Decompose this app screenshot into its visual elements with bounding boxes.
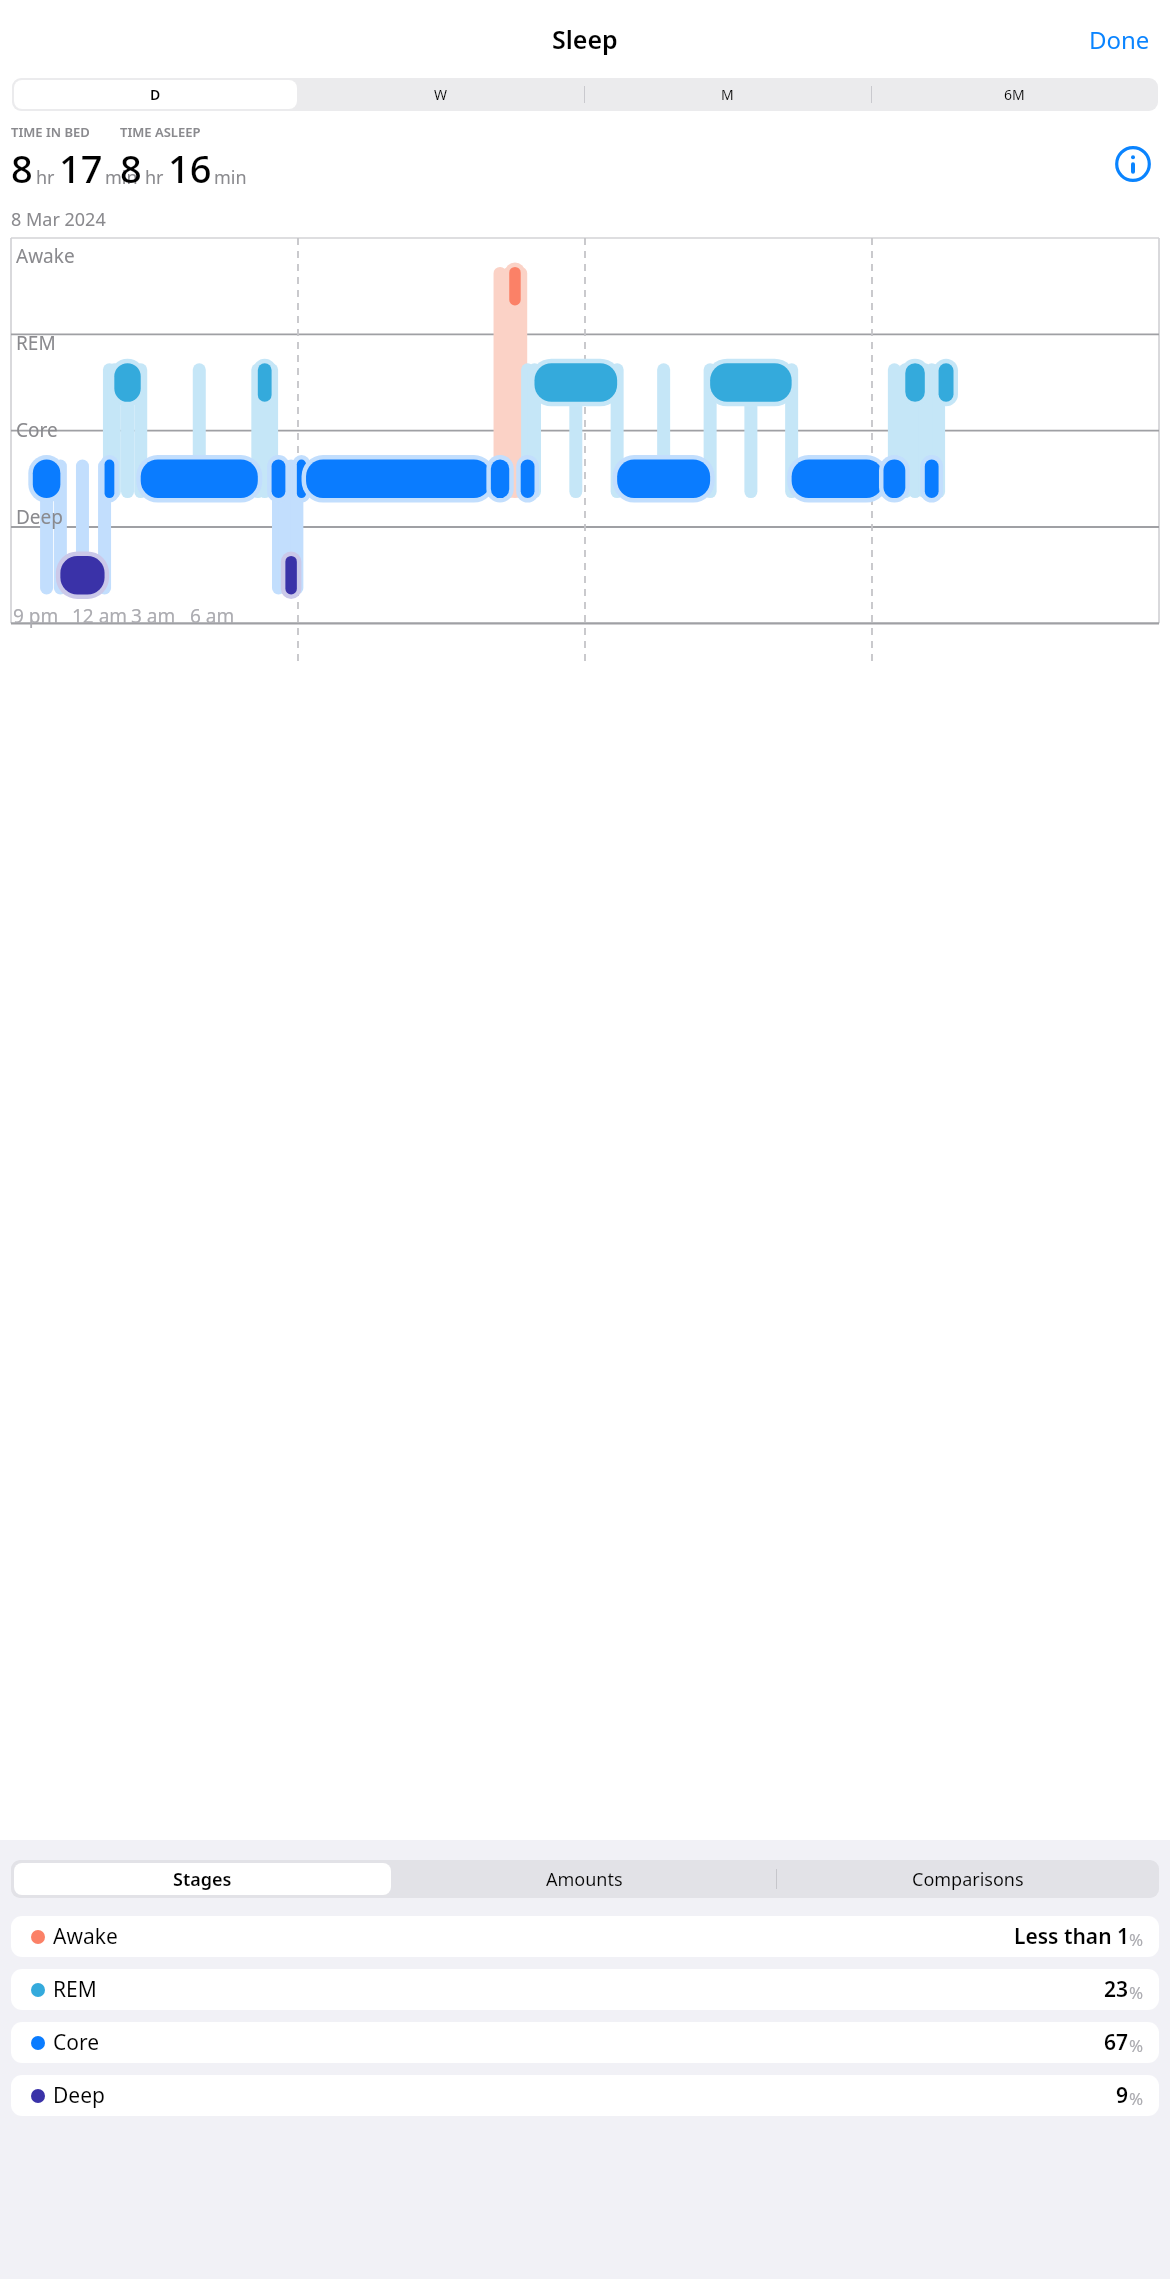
staticText: Comparisons [912,1867,1024,1892]
staticText: 3 am [131,603,176,629]
staticText: 9 pm [13,603,59,629]
staticText: hr [145,165,164,190]
staticText: Deep [53,2081,105,2110]
button[interactable]: Amounts [393,1860,776,1898]
staticText: % [1129,2087,1144,2110]
button[interactable]: 6M [871,78,1158,111]
button[interactable]: W [298,78,584,111]
staticText: REM [16,330,56,356]
staticText: Awake [16,243,75,269]
staticText: 6M [1004,85,1025,104]
staticText: D [150,85,161,104]
staticText: % [1129,1981,1144,2004]
staticText: Amounts [546,1867,623,1892]
button[interactable]: D [14,80,297,109]
staticText: 23 [1104,1975,1129,2004]
button[interactable]: Awake [11,1916,1159,1957]
staticText: Core [53,2028,100,2057]
button[interactable]: Core [11,2022,1159,2063]
staticText: 17 [59,142,103,194]
button[interactable]: Deep [11,2075,1159,2116]
staticText: 67 [1104,2028,1129,2057]
staticText: Stages [173,1867,232,1892]
button[interactable]: Comparisons [776,1860,1159,1898]
button[interactable]: Done [1081,17,1158,62]
staticText: 9 [1116,2081,1129,2110]
staticText: 16 [168,142,212,194]
button[interactable]: Stages [11,1860,393,1898]
staticText: 6 am [190,603,235,629]
staticText: Stages [174,1867,231,1892]
button[interactable]: D [12,78,298,111]
staticText: Deep [16,504,63,530]
staticText: 8 [120,142,142,194]
staticText: 8 Mar 2024 [11,207,106,232]
staticText: Awake [53,1922,118,1951]
button[interactable]: Stages [14,1863,391,1895]
staticText: W [434,85,448,104]
staticText: REM [53,1975,97,2004]
staticText: % [1129,2034,1144,2057]
staticText: Sleep [552,22,618,56]
staticText: hr [36,165,55,190]
staticText: Less than 1 [1014,1922,1129,1951]
staticText: 12 am [72,603,128,629]
staticText: min [105,165,138,190]
staticText: Core [16,417,58,443]
staticText: % [1129,1928,1144,1951]
staticText: Done [1089,23,1150,56]
staticText: 8 [11,142,33,194]
button[interactable]: M [584,78,871,111]
button[interactable]: REM [11,1969,1159,2010]
staticText: TIME ASLEEP [120,123,201,141]
staticText: TIME IN BED [11,123,90,141]
button[interactable]: About sleep data [1112,143,1154,185]
staticText: min [214,165,247,190]
staticText: M [721,85,734,104]
staticText: D [150,85,161,104]
